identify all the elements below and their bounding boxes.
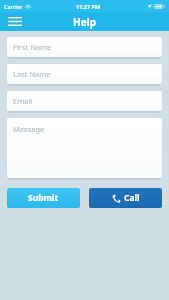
button[interactable]: Last Name — [7, 64, 162, 84]
staticText: Carrier — [4, 3, 23, 10]
staticText: Message — [13, 124, 45, 134]
staticText: First Name — [13, 42, 52, 52]
button[interactable]: Message — [7, 118, 162, 178]
button[interactable]: Submit — [7, 188, 80, 208]
button[interactable]: First Name — [7, 37, 162, 57]
staticText: Help — [73, 15, 96, 29]
staticText: Email — [13, 96, 33, 106]
staticText: Submit — [28, 192, 59, 204]
button[interactable]: Email — [7, 91, 162, 111]
button[interactable]: Call — [89, 188, 162, 208]
staticText: Last Name — [13, 69, 51, 79]
staticText: Call — [124, 192, 140, 204]
button[interactable]: Open navigation menu — [5, 12, 25, 31]
staticText: 11:27 PM — [76, 3, 101, 10]
